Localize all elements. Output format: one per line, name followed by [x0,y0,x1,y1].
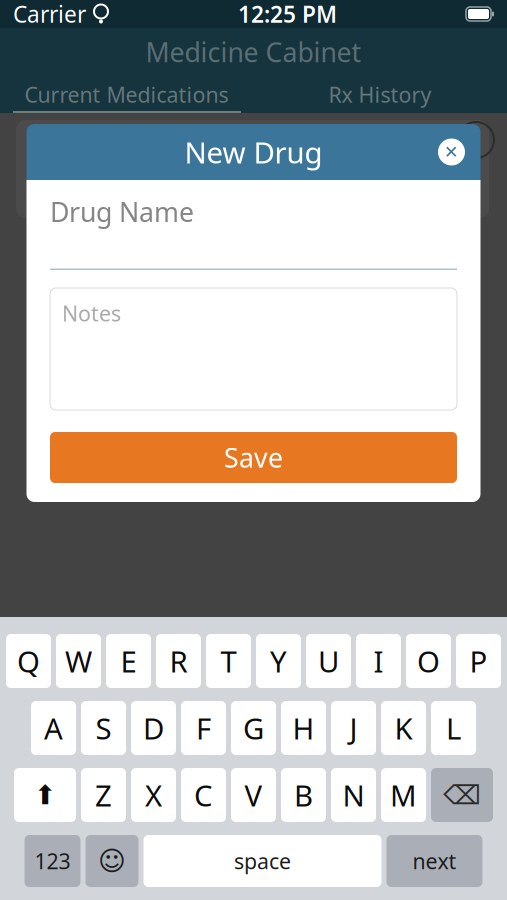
staticText: Y [270,641,287,680]
staticText: A [44,708,63,747]
staticText: I [373,641,383,680]
staticText: Carrier [13,0,86,29]
staticText: 123 [34,847,70,875]
button[interactable]: Q [6,634,51,688]
staticText: ⌫ [443,780,481,810]
button[interactable]: Save [50,432,457,483]
button[interactable]: Close [429,130,473,174]
button[interactable]: Current Medications [0,76,253,113]
staticText: Q [17,641,40,680]
staticText: Notes [62,299,121,327]
button[interactable]: T [206,634,251,688]
button[interactable]: O [406,634,451,688]
button[interactable]: F [181,701,226,755]
staticText: N [342,775,364,814]
button[interactable]: 123 [24,835,80,887]
button[interactable]: Z [81,768,126,822]
staticText: Rx History [328,80,431,109]
button[interactable]: D [131,701,176,755]
staticText: Z [95,775,112,814]
staticText: New Drug [184,132,322,171]
button[interactable]: R [156,634,201,688]
staticText: T [220,641,236,680]
button[interactable]: C [181,768,226,822]
button[interactable]: Emoji [85,835,138,887]
button[interactable]: M [381,768,426,822]
staticText: V [244,775,262,814]
staticText: ✕ [444,142,459,162]
button[interactable]: Delete [431,768,493,822]
button[interactable]: N [331,768,376,822]
staticText: E [120,641,136,680]
button[interactable]: B [281,768,326,822]
staticText: O [417,641,440,680]
staticText: R [169,641,187,680]
staticText: next [412,847,456,875]
staticText: F [196,708,211,747]
staticText: Drug Name [50,194,194,229]
button[interactable]: I [356,634,401,688]
button[interactable]: X [131,768,176,822]
staticText: P [469,641,487,680]
staticText: X [145,775,162,814]
staticText: L [446,708,461,747]
button[interactable]: Rx History [253,76,507,113]
staticText: M [390,775,417,814]
staticText: G [243,708,264,747]
button[interactable]: J [331,701,376,755]
staticText: Current Medications [24,80,228,109]
staticText: B [294,775,313,814]
button[interactable]: P [456,634,501,688]
staticText: D [143,708,164,747]
button[interactable]: S [81,701,126,755]
button[interactable]: W [56,634,101,688]
staticText: C [194,775,213,814]
button[interactable]: U [306,634,351,688]
button[interactable]: E [106,634,151,688]
button[interactable]: Shift [14,768,76,822]
staticText: ⬆ [34,780,56,810]
staticText: J [349,708,357,747]
button[interactable]: space [143,835,381,887]
button[interactable]: G [231,701,276,755]
button[interactable]: Y [256,634,301,688]
button[interactable]: V [231,768,276,822]
staticText: ☺ [98,846,126,876]
staticText: space [234,847,291,875]
staticText: 12:25 PM [238,0,337,29]
button[interactable]: A [31,701,76,755]
button[interactable]: K [381,701,426,755]
button[interactable]: next [386,835,482,887]
staticText: H [292,708,314,747]
staticText: Save [224,440,283,475]
staticText: S [95,708,111,747]
staticText: U [318,641,339,680]
staticText: Medicine Cabinet [145,34,361,70]
staticText: W [65,641,92,680]
button[interactable]: H [281,701,326,755]
button[interactable]: L [431,701,476,755]
staticText: K [394,708,412,747]
